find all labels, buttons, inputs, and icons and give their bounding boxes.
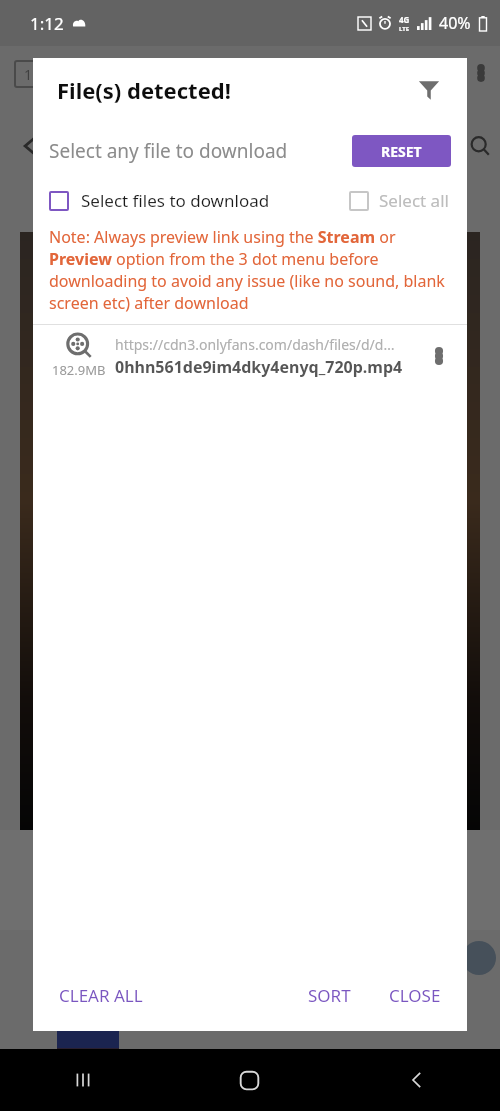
staticText: 1 — [24, 65, 33, 84]
staticText: 1:12 — [30, 12, 64, 35]
button[interactable]: Back — [12, 128, 48, 164]
staticText: Note: Always preview link using the Stre… — [49, 226, 451, 314]
button[interactable]: RESET — [352, 135, 451, 167]
staticText: 40% — [439, 12, 471, 34]
button[interactable]: File options — [421, 338, 457, 374]
staticText: RESET — [381, 142, 422, 161]
staticText: CLOSE — [389, 984, 441, 1007]
button[interactable]: SORT — [296, 976, 363, 1015]
button[interactable]: Tabs — [14, 60, 42, 88]
button[interactable]: CLEAR ALL — [47, 976, 155, 1015]
button[interactable]: Filter — [409, 70, 449, 110]
button[interactable]: Select files to download — [49, 189, 270, 212]
staticText: LTE — [399, 25, 410, 33]
button[interactable]: Action — [462, 941, 496, 975]
staticText: 4G — [399, 14, 410, 25]
button[interactable]: Search — [462, 128, 498, 164]
button[interactable]: Back — [333, 1049, 500, 1111]
button[interactable]: 182.9MB — [33, 325, 467, 387]
staticText: SORT — [308, 984, 351, 1007]
staticText: Select any file to download — [49, 138, 288, 164]
staticText: Select all — [379, 189, 449, 212]
button[interactable]: CLOSE — [377, 976, 453, 1015]
staticText: Select files to download — [81, 189, 270, 212]
button[interactable]: Home — [166, 1049, 333, 1111]
button[interactable]: Recents — [0, 1049, 166, 1111]
staticText: File(s) detected! — [57, 75, 231, 105]
staticText: https://cdn3.onlyfans.com/dash/files/d/d… — [115, 335, 395, 354]
staticText: 0hhn561de9im4dky4enyq_720p.mp4 — [115, 356, 403, 378]
staticText: 182.9MB — [52, 361, 106, 379]
staticText: CLEAR ALL — [59, 984, 143, 1007]
button[interactable]: Select all — [349, 189, 449, 212]
button[interactable]: More options — [466, 58, 496, 88]
